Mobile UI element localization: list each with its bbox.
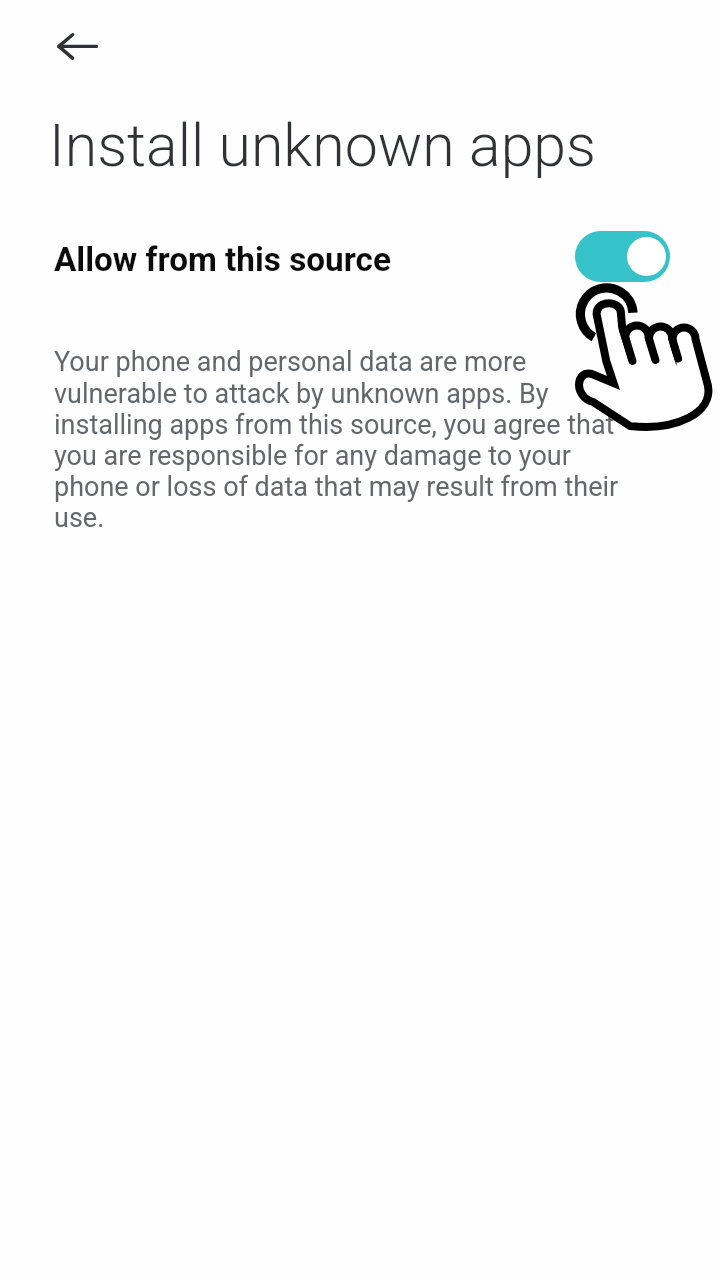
button[interactable]: Allow from this source (0, 212, 720, 296)
staticText: Allow from this source (54, 240, 391, 279)
staticText: Your phone and personal data are more vu… (54, 346, 620, 533)
button[interactable]: Allow from this source, on (575, 231, 670, 282)
staticText: Install unknown apps (49, 111, 596, 180)
button[interactable]: Back (35, 22, 101, 72)
